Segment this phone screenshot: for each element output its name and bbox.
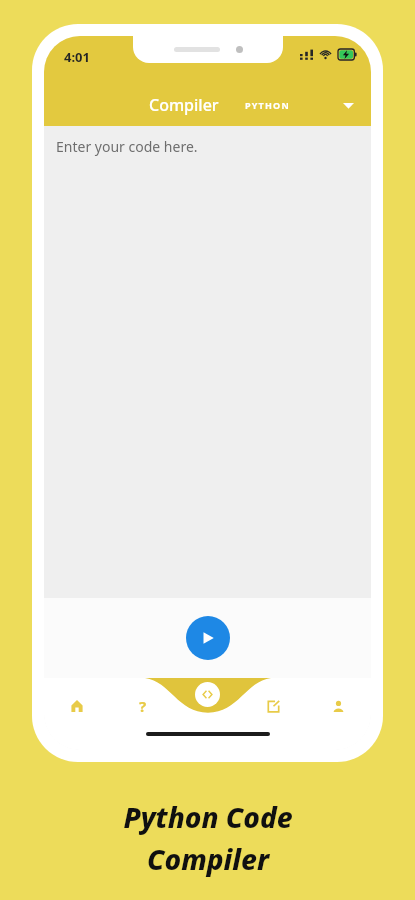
button[interactable]: Home xyxy=(44,688,110,724)
button[interactable]: Run code xyxy=(186,616,230,660)
staticText: Compiler xyxy=(147,840,269,878)
staticText: 4:01 xyxy=(64,48,90,66)
staticText: PYTHON xyxy=(245,99,290,111)
button[interactable]: Code xyxy=(195,682,220,707)
staticText: Enter your code here. xyxy=(56,137,198,156)
button[interactable]: PYTHON xyxy=(245,99,290,111)
button[interactable]: Select language xyxy=(339,96,357,114)
button[interactable]: Profile xyxy=(306,688,371,724)
button[interactable]: Share xyxy=(241,688,306,724)
staticText: ? xyxy=(139,696,147,716)
button[interactable]: Enter your code here. xyxy=(44,126,371,598)
button[interactable]: Help xyxy=(110,688,176,724)
staticText: Python Code xyxy=(123,798,293,836)
button[interactable]: Compiler xyxy=(149,94,219,116)
